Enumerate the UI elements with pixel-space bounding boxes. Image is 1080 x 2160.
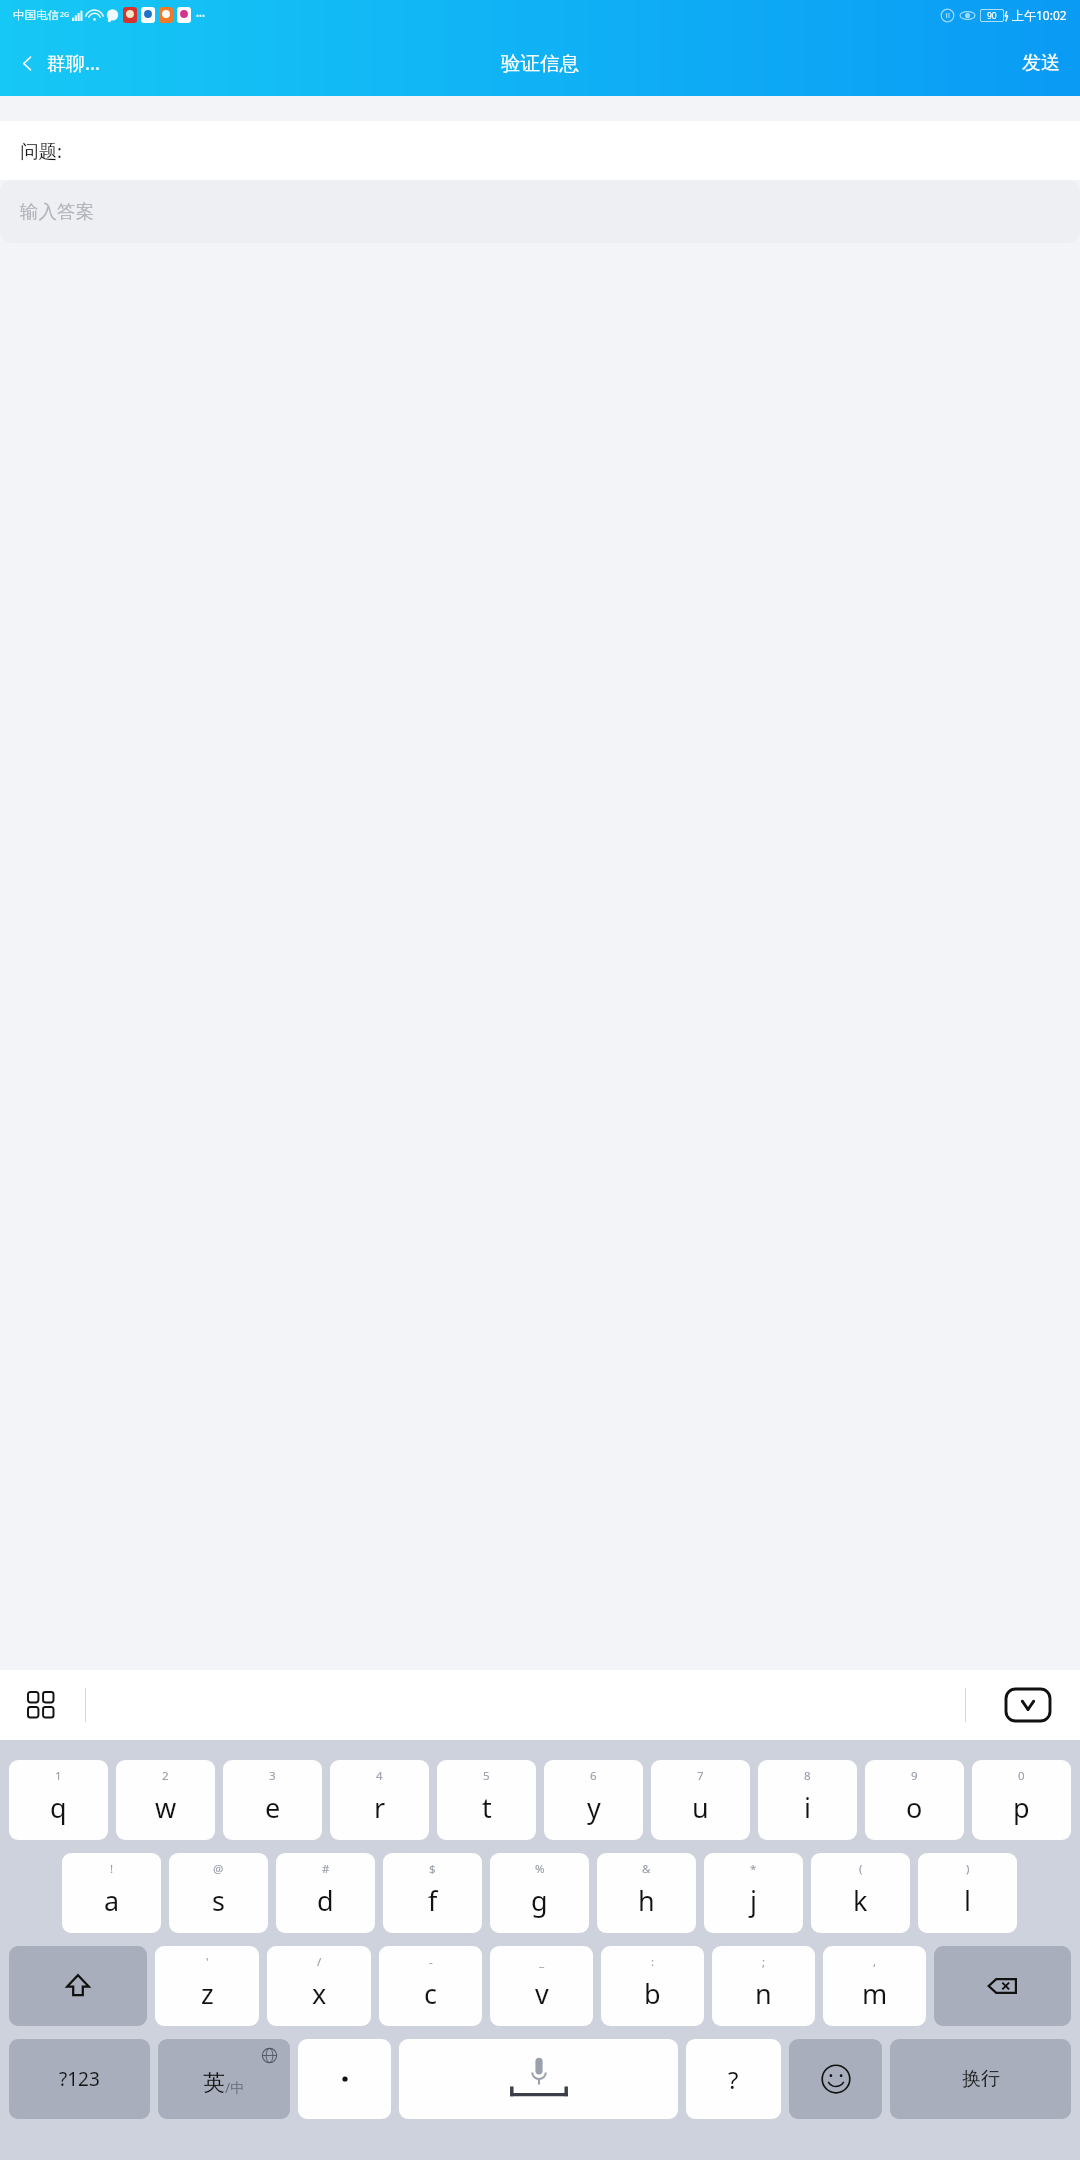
- button[interactable]: ?: [686, 2039, 781, 2119]
- staticText: •••: [196, 10, 206, 21]
- staticText: -: [429, 1954, 433, 1970]
- button[interactable]: -: [379, 1946, 482, 2026]
- button[interactable]: :: [601, 1946, 704, 2026]
- staticText: ): [966, 1861, 970, 1877]
- button[interactable]: Emoji: [789, 2039, 882, 2119]
- button[interactable]: @: [169, 1853, 268, 1933]
- staticText: #: [322, 1861, 330, 1877]
- staticText: 3: [269, 1768, 276, 1784]
- staticText: 中国电信: [13, 8, 59, 22]
- button[interactable]: 群聊…: [0, 42, 113, 84]
- staticText: q: [50, 1789, 67, 1826]
- button[interactable]: Switch language: [158, 2039, 290, 2119]
- staticText: 7: [697, 1768, 704, 1784]
- button[interactable]: Hide keyboard: [1006, 1689, 1050, 1721]
- button[interactable]: !: [62, 1853, 161, 1933]
- button[interactable]: ': [155, 1946, 259, 2026]
- button[interactable]: ): [918, 1853, 1017, 1933]
- button[interactable]: Backspace: [934, 1946, 1071, 2026]
- button[interactable]: _: [490, 1946, 593, 2026]
- staticText: &: [642, 1861, 651, 1877]
- staticText: z: [201, 1975, 214, 2012]
- staticText: s: [212, 1882, 225, 1919]
- button[interactable]: [298, 2039, 391, 2119]
- other: Backspace: [986, 1969, 1020, 2003]
- staticText: 2: [162, 1768, 169, 1784]
- staticText: d: [317, 1882, 334, 1919]
- other: Switch language: [158, 2039, 290, 2119]
- staticText: e: [265, 1789, 281, 1826]
- staticText: 5: [483, 1768, 490, 1784]
- staticText: /中: [225, 2078, 245, 2097]
- staticText: 输入答案: [20, 200, 94, 223]
- button[interactable]: 3: [223, 1760, 322, 1840]
- staticText: u: [692, 1789, 709, 1826]
- button[interactable]: 4: [330, 1760, 429, 1840]
- button[interactable]: 8: [758, 1760, 857, 1840]
- staticText: f: [428, 1882, 438, 1919]
- button[interactable]: %: [490, 1853, 589, 1933]
- staticText: 2G: [60, 10, 70, 20]
- button[interactable]: 7: [651, 1760, 750, 1840]
- staticText: 群聊…: [47, 50, 101, 76]
- staticText: m: [862, 1975, 888, 2012]
- button[interactable]: (: [811, 1853, 910, 1933]
- staticText: 验证信息: [501, 51, 579, 76]
- staticText: a: [104, 1882, 120, 1919]
- staticText: c: [424, 1975, 437, 2012]
- button[interactable]: ;: [712, 1946, 815, 2026]
- staticText: ,: [873, 1954, 877, 1970]
- button[interactable]: ?123: [9, 2039, 150, 2119]
- staticText: ;: [762, 1954, 766, 1970]
- button[interactable]: 2: [116, 1760, 215, 1840]
- staticText: 英: [203, 2069, 225, 2097]
- staticText: k: [853, 1882, 868, 1919]
- staticText: v: [535, 1975, 549, 2012]
- button[interactable]: *: [704, 1853, 803, 1933]
- staticText: l: [964, 1882, 971, 1919]
- staticText: 问题:: [20, 138, 62, 163]
- staticText: ?: [728, 2063, 739, 2096]
- button[interactable]: $: [383, 1853, 482, 1933]
- staticText: r: [374, 1789, 386, 1826]
- staticText: x: [312, 1975, 327, 2012]
- staticText: 发送: [1022, 51, 1060, 75]
- button[interactable]: Space: [399, 2039, 678, 2119]
- staticText: ': [206, 1954, 209, 1970]
- button[interactable]: #: [276, 1853, 375, 1933]
- button[interactable]: 5: [437, 1760, 536, 1840]
- staticText: o: [906, 1789, 923, 1826]
- staticText: b: [644, 1975, 661, 2012]
- other: Emoji: [821, 2064, 851, 2094]
- button[interactable]: 输入答案: [0, 180, 1080, 243]
- staticText: :: [651, 1954, 655, 1970]
- staticText: /: [317, 1954, 322, 1970]
- button[interactable]: &: [597, 1853, 696, 1933]
- staticText: 1: [55, 1768, 62, 1784]
- button[interactable]: /: [267, 1946, 371, 2026]
- button[interactable]: Keyboard panels: [20, 1684, 62, 1726]
- staticText: 4: [376, 1768, 383, 1784]
- staticText: t: [482, 1789, 492, 1826]
- other: Space: [499, 2056, 579, 2102]
- button[interactable]: ,: [823, 1946, 926, 2026]
- button[interactable]: 0: [972, 1760, 1071, 1840]
- staticText: $: [429, 1861, 436, 1877]
- staticText: 90: [987, 10, 997, 22]
- button[interactable]: 9: [865, 1760, 964, 1840]
- staticText: (: [859, 1861, 863, 1877]
- staticText: p: [1013, 1789, 1030, 1826]
- button[interactable]: 6: [544, 1760, 643, 1840]
- button[interactable]: 1: [9, 1760, 108, 1840]
- staticText: i: [804, 1789, 811, 1826]
- staticText: 换行: [962, 2067, 1000, 2091]
- button[interactable]: Shift: [9, 1946, 147, 2026]
- staticText: @: [213, 1861, 224, 1877]
- staticText: h: [638, 1882, 655, 1919]
- button[interactable]: 问题:: [0, 121, 1080, 180]
- other: Shift: [63, 1971, 93, 2001]
- staticText: n: [755, 1975, 772, 2012]
- button[interactable]: 发送: [1002, 41, 1080, 85]
- button[interactable]: 换行: [890, 2039, 1071, 2119]
- staticText: w: [155, 1789, 177, 1826]
